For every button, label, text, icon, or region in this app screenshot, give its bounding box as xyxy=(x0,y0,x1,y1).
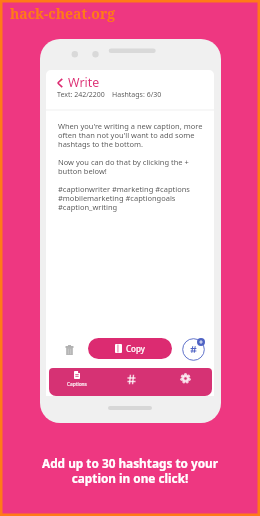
staticText: When you're writing a new caption, more … xyxy=(58,121,203,212)
button[interactable]: Captions xyxy=(49,368,104,396)
button[interactable]: Add hashtags xyxy=(180,335,210,365)
button[interactable]: Copy xyxy=(88,338,172,359)
staticText: Add up to 30 hashtags to your caption in… xyxy=(0,455,260,486)
staticText: Copy xyxy=(126,343,145,354)
button[interactable]: Hashtags xyxy=(104,368,158,396)
staticText: hack-cheat.org xyxy=(10,4,116,23)
staticText: Captions xyxy=(67,381,87,388)
button[interactable]: Write xyxy=(56,74,100,91)
button[interactable]: Delete xyxy=(61,341,78,358)
staticText: Text: 242/2200 Hashtags: 6/30 xyxy=(57,90,162,100)
button[interactable]: Settings xyxy=(158,368,212,396)
staticText: Write xyxy=(68,74,100,91)
